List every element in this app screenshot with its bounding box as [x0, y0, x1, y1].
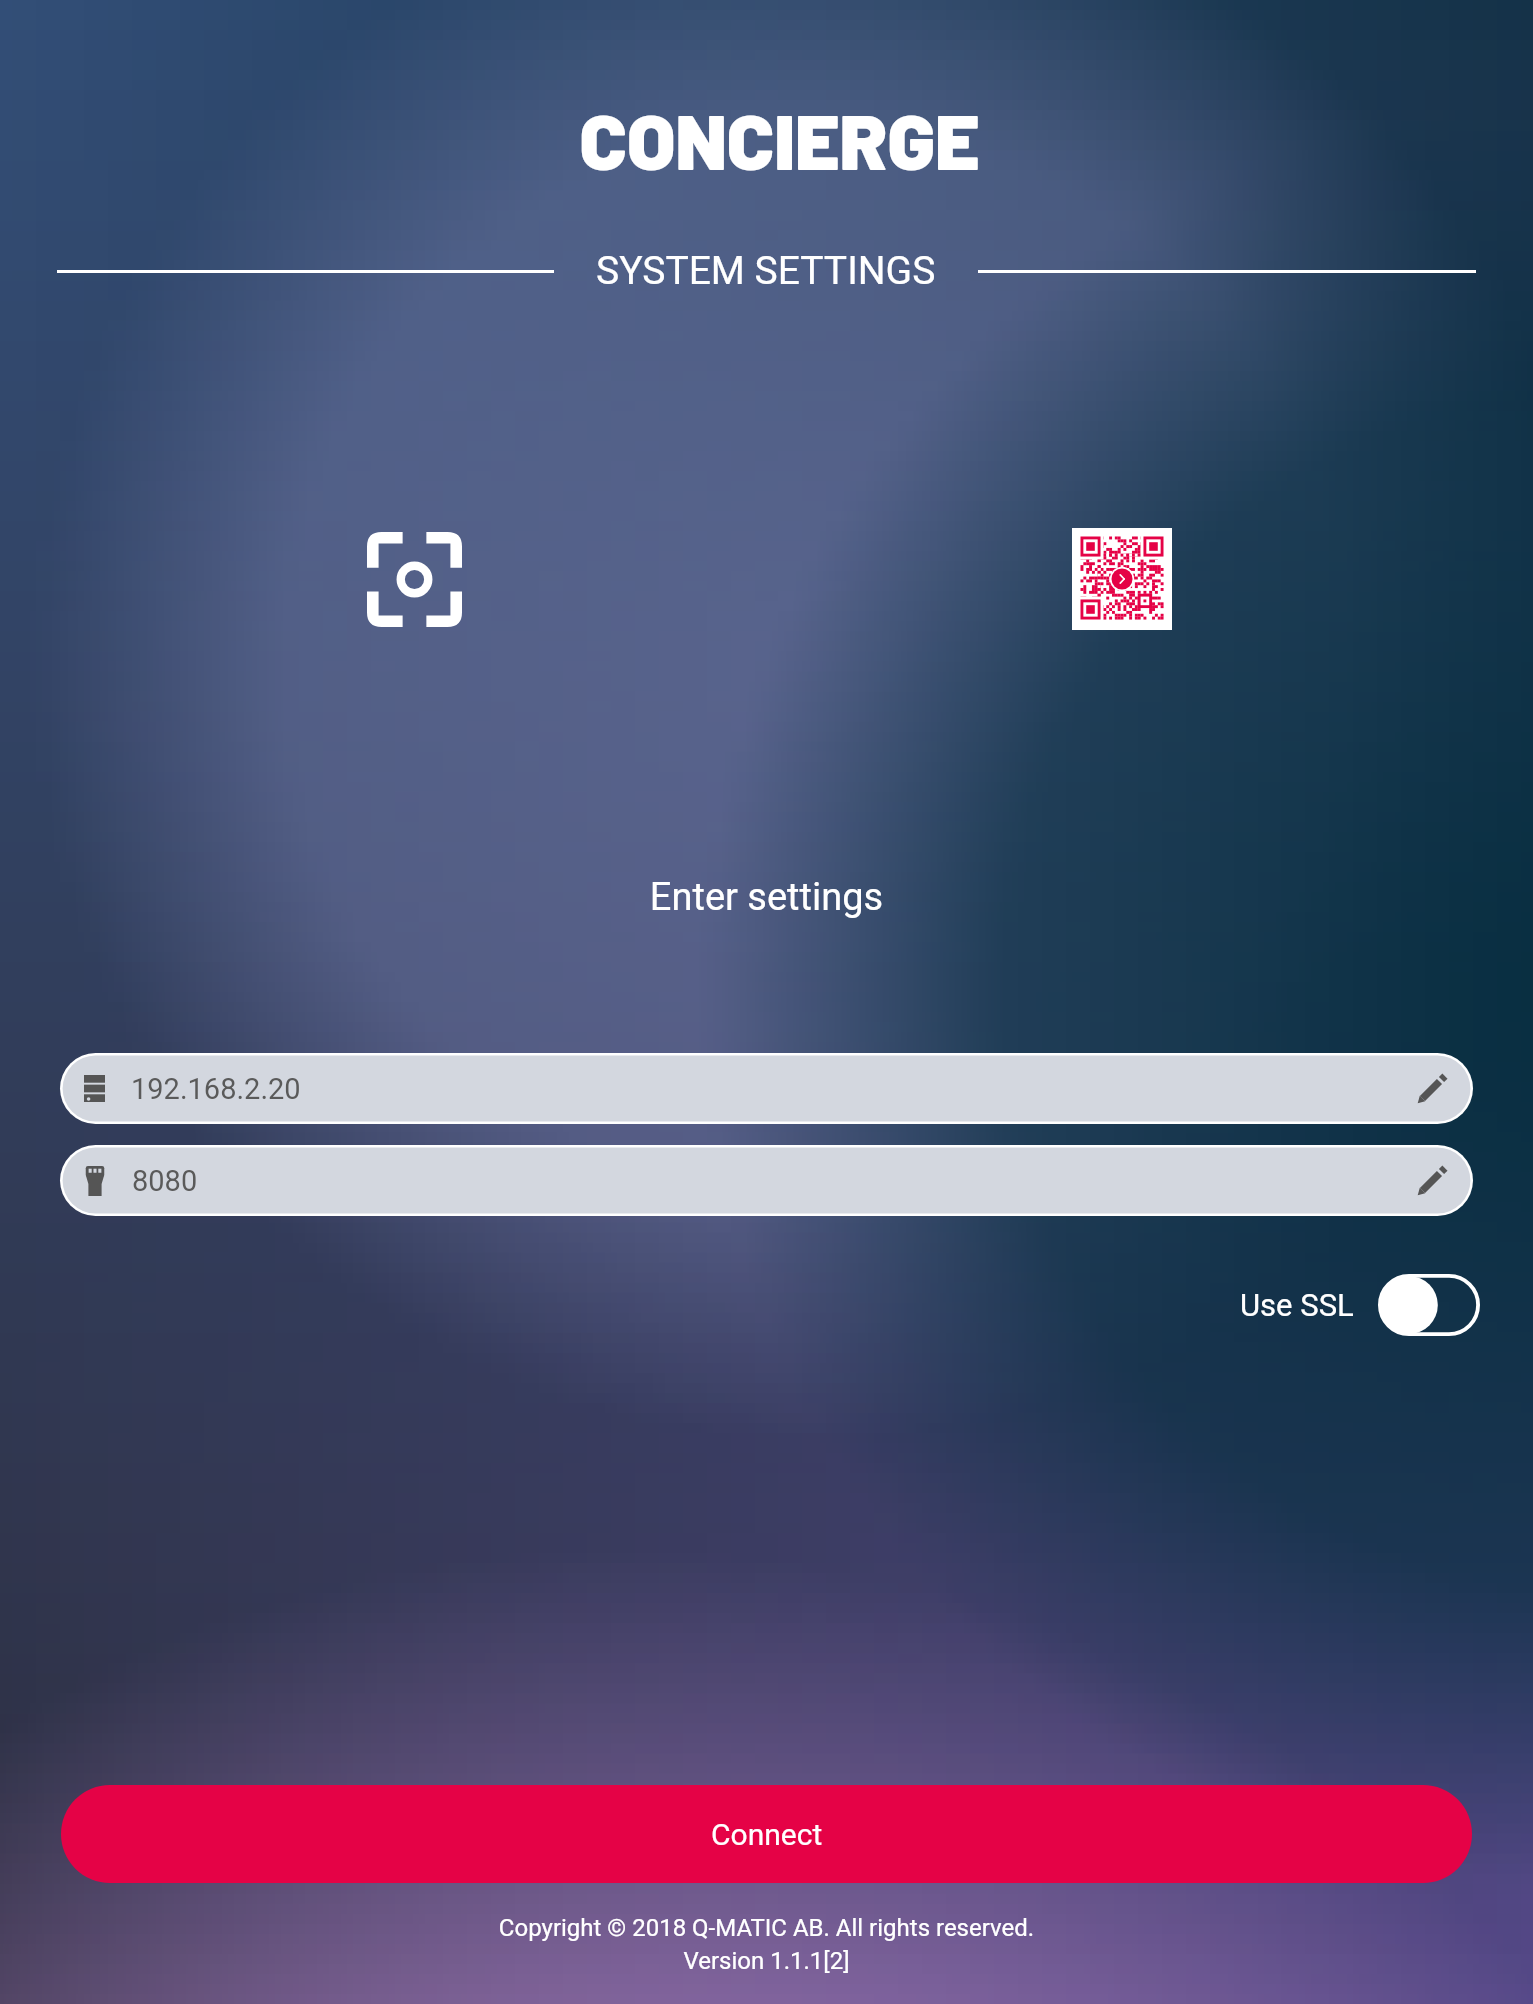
- staticText: Enter settings: [0, 875, 1533, 920]
- button[interactable]: Connect: [61, 1785, 1472, 1883]
- staticText: Version 1.1.1[2]: [0, 1947, 1533, 1975]
- button[interactable]: Scan QR code: [367, 532, 462, 627]
- button[interactable]: Use SSL: [1240, 1274, 1480, 1336]
- staticText: 192.168.2.20: [131, 1072, 301, 1106]
- button[interactable]: 8080: [60, 1145, 1473, 1216]
- staticText: Use SSL: [1240, 1287, 1354, 1323]
- staticText: SYSTEM SETTINGS: [596, 248, 936, 294]
- staticText: CONCIERGE: [26, 92, 1533, 186]
- button[interactable]: Edit: [1415, 1072, 1449, 1106]
- button[interactable]: Scan QR code: [1072, 528, 1172, 630]
- staticText: Copyright © 2018 Q-MATIC AB. All rights …: [0, 1914, 1533, 1942]
- button[interactable]: 192.168.2.20: [60, 1053, 1473, 1124]
- button[interactable]: Use SSL toggle: [1378, 1274, 1480, 1336]
- button[interactable]: Edit: [1415, 1164, 1449, 1198]
- staticText: 8080: [132, 1164, 198, 1198]
- staticText: Connect: [711, 1817, 823, 1852]
